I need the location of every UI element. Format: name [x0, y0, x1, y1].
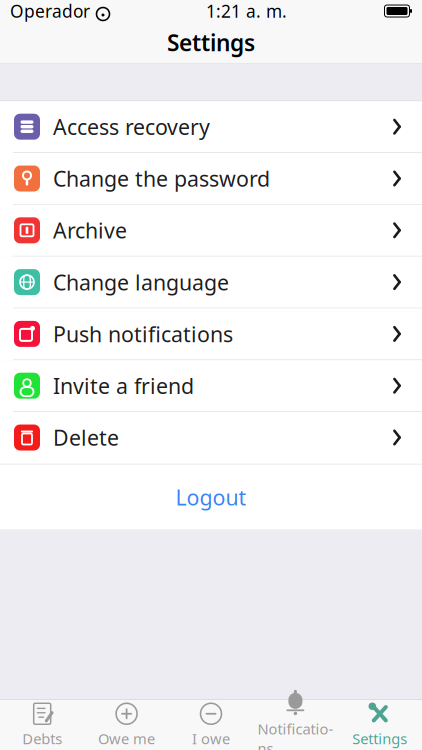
button[interactable]: Settings — [338, 700, 422, 750]
staticText: Change language — [53, 268, 229, 296]
staticText: Settings — [167, 27, 255, 57]
button[interactable]: I owe — [169, 700, 253, 750]
staticText: Push notifications — [53, 320, 233, 348]
button[interactable]: Delete — [0, 412, 422, 464]
staticText: Notifications — [257, 719, 333, 750]
staticText: Archive — [53, 216, 127, 244]
button[interactable]: Logout — [149, 473, 272, 521]
staticText: Delete — [53, 423, 119, 452]
button[interactable]: Debts — [0, 700, 84, 750]
staticText: Access recovery — [53, 112, 210, 141]
button[interactable]: Notifications — [253, 700, 338, 750]
button[interactable]: Archive — [0, 205, 422, 257]
button[interactable]: Push notifications — [0, 308, 422, 360]
staticText: Owe me — [98, 729, 155, 748]
staticText: Debts — [22, 729, 62, 748]
staticText: Operador — [10, 0, 90, 22]
staticText: Logout — [175, 483, 246, 511]
staticText: Change the password — [53, 164, 270, 193]
staticText: 1:21 a. m. — [206, 0, 287, 22]
button[interactable]: Access recovery — [0, 101, 422, 153]
button[interactable]: Invite a friend — [0, 360, 422, 412]
staticText: Invite a friend — [53, 371, 194, 400]
button[interactable]: Change language — [0, 257, 422, 308]
button[interactable]: Owe me — [84, 700, 169, 750]
staticText: Settings — [352, 729, 407, 748]
button[interactable]: Change the password — [0, 153, 422, 205]
staticText: I owe — [192, 729, 230, 748]
